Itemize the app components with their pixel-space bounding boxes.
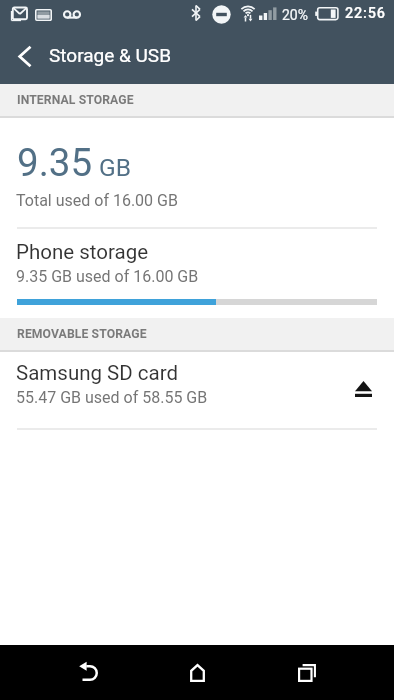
staticText: INTERNAL STORAGE <box>17 93 134 107</box>
staticText: Storage & USB <box>49 44 171 66</box>
staticText: 55.47 GB used of 58.55 GB <box>16 388 208 407</box>
staticText: 22:56 <box>345 5 386 22</box>
button[interactable] <box>6 37 44 75</box>
staticText: Samsung SD card <box>16 361 179 385</box>
button[interactable] <box>347 373 380 405</box>
button[interactable] <box>279 645 334 700</box>
button[interactable] <box>61 645 116 700</box>
staticText: 20% <box>282 7 308 23</box>
button[interactable]: Samsung SD card <box>0 355 394 415</box>
staticText: Phone storage <box>16 240 149 264</box>
staticText: 9.35 <box>17 140 93 185</box>
staticText: REMOVABLE STORAGE <box>17 327 147 341</box>
staticText: GB <box>99 153 131 182</box>
staticText: 9.35 GB used of 16.00 GB <box>16 267 199 286</box>
button[interactable] <box>170 645 225 700</box>
staticText: Total used of 16.00 GB <box>16 191 178 210</box>
button[interactable]: Phone storage <box>0 234 394 306</box>
